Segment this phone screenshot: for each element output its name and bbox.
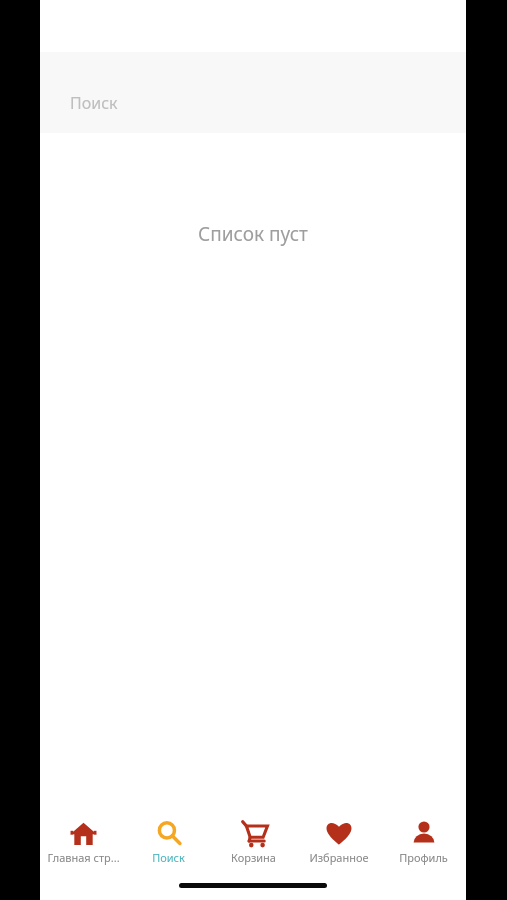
staticText: Профиль — [399, 850, 448, 865]
button[interactable]: Поиск — [126, 809, 211, 871]
staticText: Корзина — [231, 850, 276, 865]
button[interactable]: Избранное — [296, 809, 381, 871]
staticText: Главная стр... — [47, 850, 120, 865]
button[interactable]: Профиль — [381, 809, 466, 871]
button[interactable]: Корзина — [211, 809, 296, 871]
staticText: Избранное — [309, 850, 369, 865]
button[interactable]: Поиск — [40, 52, 466, 133]
staticText: Поиск — [152, 850, 185, 865]
staticText: Поиск — [70, 92, 118, 114]
staticText: Список пуст — [198, 221, 308, 247]
button[interactable]: Главная страница — [40, 809, 126, 871]
